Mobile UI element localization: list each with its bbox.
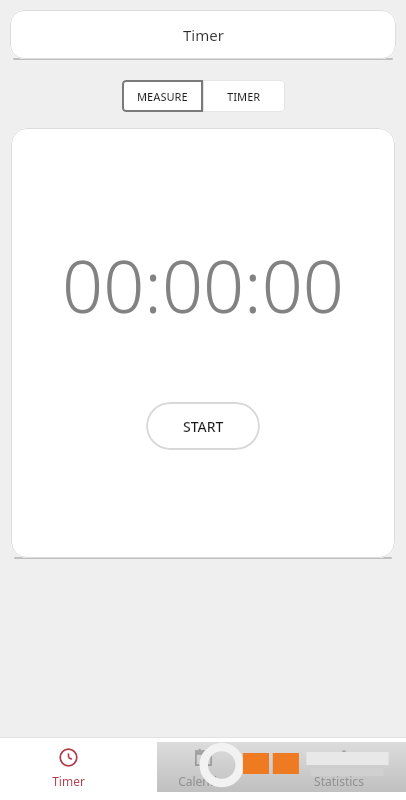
button[interactable]: TIMER — [203, 80, 285, 112]
button[interactable]: Statistics — [271, 738, 406, 800]
button[interactable]: Timer — [0, 738, 136, 800]
staticText: MEASURE — [137, 89, 188, 104]
staticText: Timer — [183, 25, 224, 45]
staticText: 00:00:00 — [62, 236, 344, 334]
button[interactable]: START — [146, 402, 260, 450]
button[interactable]: MEASURE — [122, 80, 203, 112]
staticText: START — [183, 417, 224, 436]
staticText: Timer — [52, 773, 85, 789]
staticText: Calendar — [178, 773, 229, 789]
button[interactable]: Calendar — [136, 738, 271, 800]
staticText: TIMER — [227, 89, 261, 104]
staticText: Statistics — [314, 773, 364, 789]
